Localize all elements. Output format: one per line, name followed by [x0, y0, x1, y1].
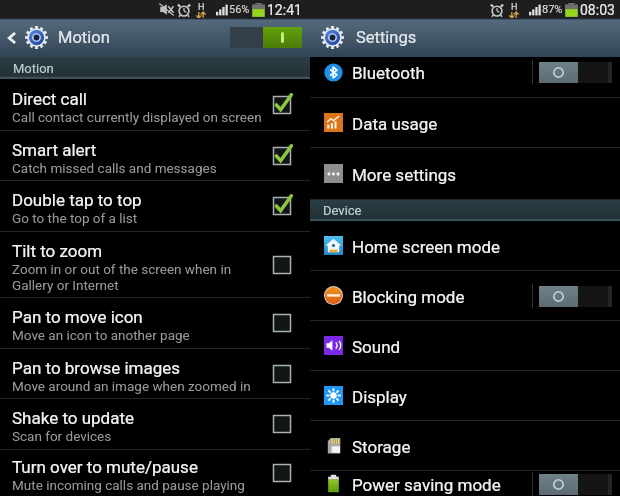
staticText: Turn over to mute/pause [12, 457, 198, 477]
staticText: Storage [352, 437, 411, 457]
button[interactable]: Settings [310, 18, 620, 57]
staticText: Device [323, 203, 362, 218]
staticText: Zoom in or out of the screen when in Gal… [12, 261, 232, 293]
button[interactable]: Direct call [0, 79, 310, 131]
button[interactable]: Power saving mode toggle [532, 472, 612, 496]
button[interactable]: Double tap to top [0, 181, 310, 232]
staticText: 12:41 [267, 2, 302, 18]
staticText: Move an icon to another page [12, 327, 190, 343]
staticText: Display [352, 387, 407, 407]
staticText: Mute incoming calls and pause playing [12, 477, 245, 493]
staticText: Tilt to zoom [12, 241, 103, 261]
button[interactable]: More settings [310, 148, 620, 200]
staticText: Direct call [12, 89, 87, 109]
staticText: Pan to browse images [12, 358, 181, 378]
button[interactable]: Pan to browse images [0, 349, 310, 399]
staticText: Motion [13, 61, 54, 76]
button[interactable]: Data usage [310, 98, 620, 148]
staticText: Pan to move icon [12, 307, 143, 327]
button[interactable]: Display [310, 371, 620, 421]
staticText: Blocking mode [352, 287, 465, 307]
staticText: 08:03 [580, 2, 615, 18]
staticText: Call contact currently displayed on scre… [12, 109, 262, 125]
button[interactable]: Storage [310, 421, 620, 471]
button[interactable]: Pan to move icon [0, 298, 310, 349]
button[interactable]: Power saving mode [310, 471, 620, 496]
button[interactable]: Motion on/off [230, 27, 302, 48]
staticText: Smart alert [12, 140, 97, 160]
staticText: Move around an image when zoomed in [12, 378, 251, 394]
staticText: 87% [542, 3, 563, 16]
staticText: Home screen mode [352, 237, 501, 257]
button[interactable]: Turn over to mute/pause [0, 450, 310, 496]
button[interactable]: Blocking mode toggle [532, 284, 612, 308]
staticText: 56% [229, 3, 250, 16]
staticText: Motion [58, 28, 110, 47]
button[interactable]: Shake to update [0, 399, 310, 450]
button[interactable]: Smart alert [0, 131, 310, 181]
button[interactable]: Sound [310, 321, 620, 371]
staticText: Double tap to top [12, 190, 142, 210]
button[interactable]: Tilt to zoom [0, 232, 310, 298]
staticText: Catch missed calls and messages [12, 160, 217, 176]
staticText: Sound [352, 337, 401, 357]
staticText: More settings [352, 165, 457, 185]
staticText: Settings [356, 28, 417, 47]
button[interactable]: Bluetooth [310, 57, 620, 98]
staticText: Data usage [352, 114, 438, 134]
button[interactable]: Bluetooth toggle [532, 60, 612, 84]
staticText: Go to the top of a list [12, 210, 138, 226]
staticText: H [511, 2, 518, 13]
staticText: Scan for devices [12, 428, 112, 444]
button[interactable]: Home screen mode [310, 221, 620, 271]
staticText: H [198, 2, 205, 13]
staticText: Power saving mode [352, 475, 501, 495]
button[interactable]: Back [5, 18, 19, 57]
button[interactable]: Blocking mode [310, 271, 620, 321]
staticText: Shake to update [12, 408, 135, 428]
staticText: Bluetooth [352, 63, 425, 83]
